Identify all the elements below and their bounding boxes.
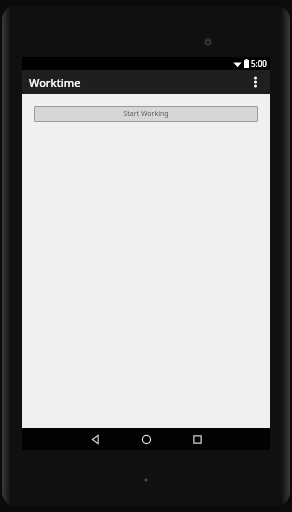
staticText: Worktime: [29, 75, 81, 90]
button[interactable]: More options: [240, 70, 270, 94]
button[interactable]: Start Working: [34, 106, 258, 122]
button[interactable]: Back: [84, 428, 106, 450]
button[interactable]: Recent apps: [186, 428, 208, 450]
button[interactable]: Home: [135, 428, 157, 450]
staticText: 5:00: [251, 58, 267, 69]
staticText: Start Working: [123, 109, 169, 119]
